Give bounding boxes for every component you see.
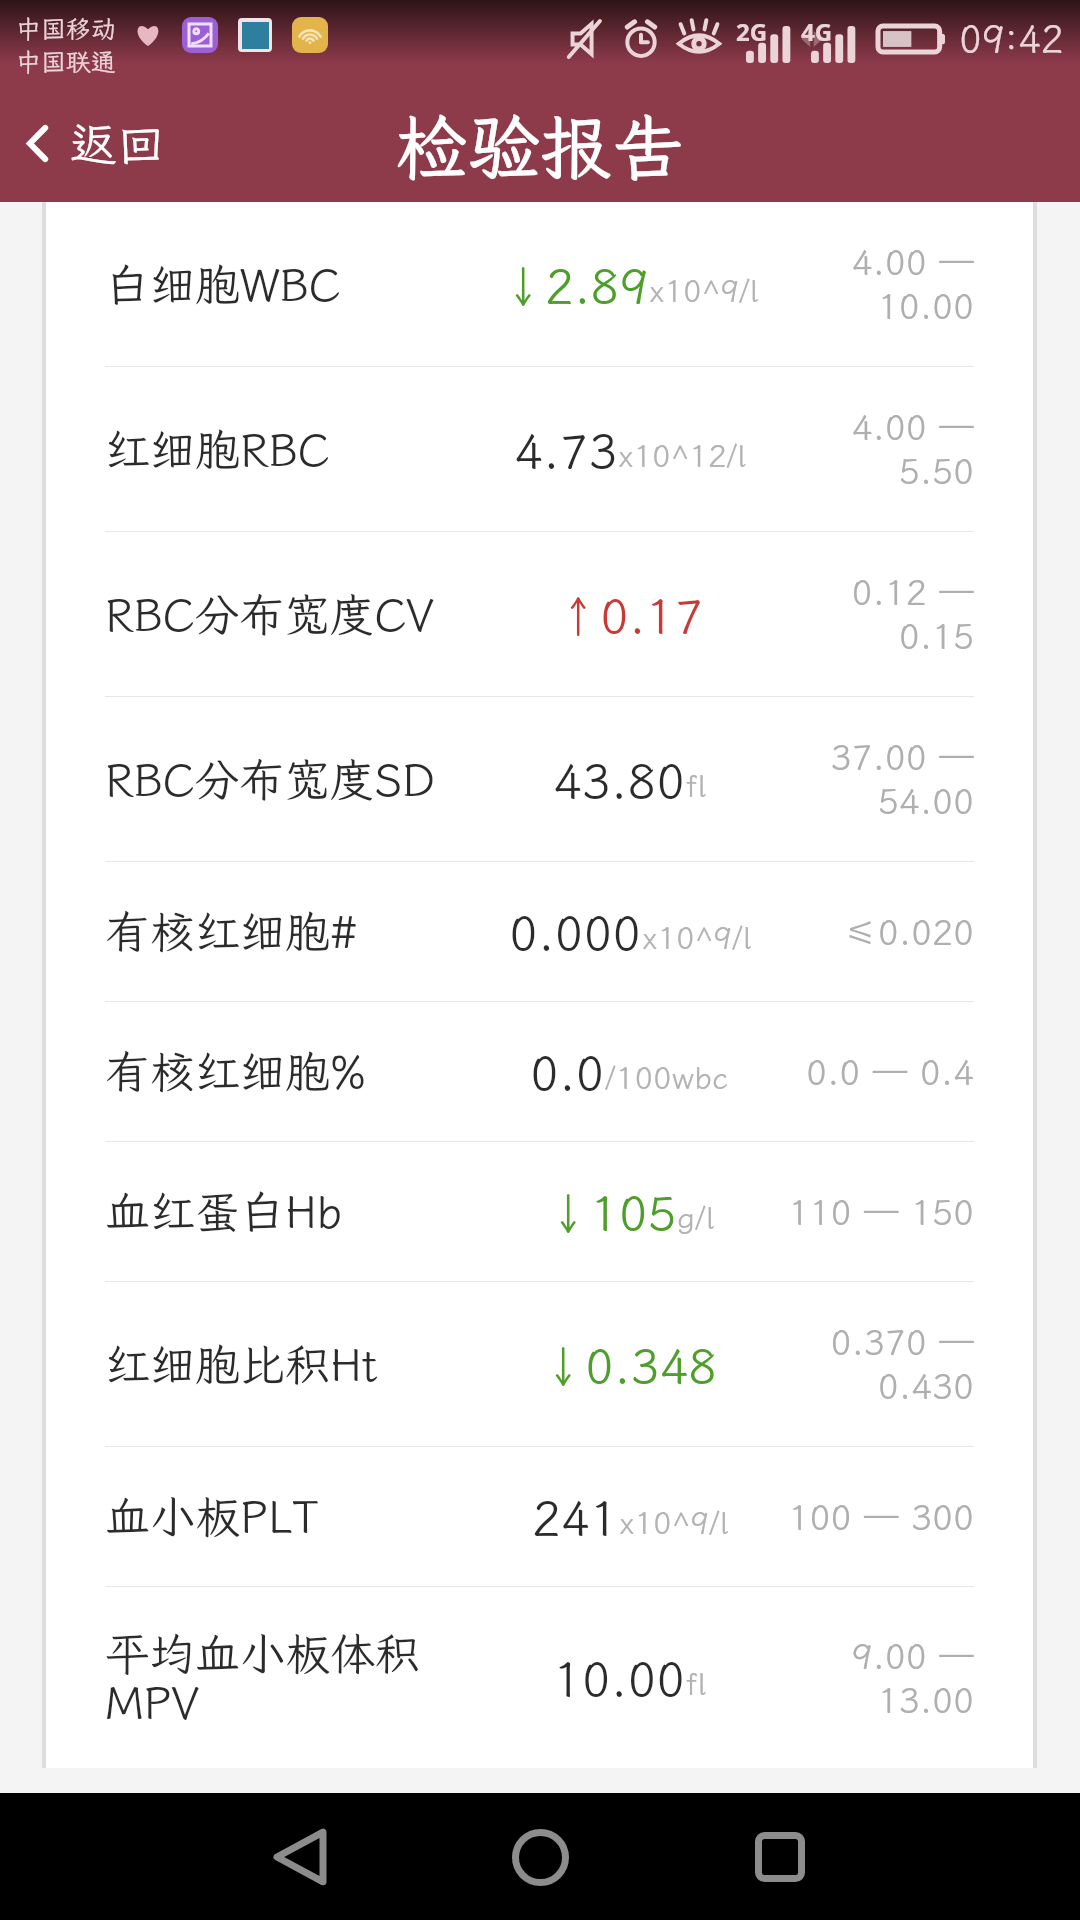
staticText: 100 — 300 <box>774 1494 974 1540</box>
button[interactable]: Home <box>480 1797 600 1917</box>
staticText: ↑ <box>556 588 600 646</box>
staticText: RBC分布宽度SD <box>105 750 435 809</box>
staticText: 有核红细胞% <box>105 1042 367 1101</box>
button[interactable]: 有核红细胞# <box>46 862 1033 1001</box>
staticText: 0.17 <box>600 583 704 646</box>
staticText: 红细胞RBC <box>105 420 330 479</box>
staticText: 白细胞WBC <box>105 255 341 314</box>
staticText: 105 <box>590 1180 677 1243</box>
button[interactable]: RBC分布宽度SD <box>46 697 1033 861</box>
staticText: 37.00 — 54.00 <box>774 734 974 824</box>
button[interactable]: RBC分布宽度CV <box>46 532 1033 696</box>
button[interactable]: Recents <box>720 1797 840 1917</box>
staticText: ↓ <box>501 258 545 316</box>
staticText: 9.00 — 13.00 <box>774 1633 974 1723</box>
staticText: fl <box>686 765 706 806</box>
staticText: 4.00 — 10.00 <box>774 239 974 329</box>
staticText: 110 — 150 <box>774 1189 974 1235</box>
staticText: ≤0.020 <box>774 909 974 955</box>
staticText: x10^9/l <box>649 270 758 311</box>
staticText: 有核红细胞# <box>105 902 358 961</box>
staticText: 0.0 — 0.4 <box>774 1049 974 1095</box>
button[interactable]: 返回 <box>0 90 190 202</box>
staticText: x10^9/l <box>642 917 751 958</box>
staticText: 血红蛋白Hb <box>105 1182 343 1241</box>
staticText: 43.80 <box>553 748 686 811</box>
staticText: 0.12 — 0.15 <box>774 569 974 659</box>
staticText: ↓ <box>541 1338 585 1396</box>
staticText: 4.73 <box>514 418 618 481</box>
staticText: 检验报告 <box>396 99 685 194</box>
button[interactable]: 血小板PLT <box>46 1447 1033 1586</box>
staticText: RBC分布宽度CV <box>105 585 434 644</box>
staticText: 红细胞比积Ht <box>105 1335 378 1394</box>
button[interactable]: 有核红细胞% <box>46 1002 1033 1141</box>
staticText: 血小板PLT <box>105 1487 319 1546</box>
button[interactable]: 红细胞RBC <box>46 367 1033 531</box>
staticText: x10^12/l <box>618 435 746 476</box>
staticText: 2G <box>736 15 768 48</box>
staticText: 中国联通 <box>16 45 117 78</box>
staticText: 中国移动 <box>16 12 117 45</box>
button[interactable]: 血红蛋白Hb <box>46 1142 1033 1281</box>
staticText: g/l <box>677 1197 714 1238</box>
staticText: 平均血小板体积MPV <box>105 1624 485 1731</box>
staticText: 4.00 — 5.50 <box>774 404 974 494</box>
staticText: 241 <box>532 1485 619 1548</box>
button[interactable]: 平均血小板体积MPV <box>46 1587 1033 1768</box>
button[interactable]: Back <box>240 1797 360 1917</box>
staticText: 09:42 <box>959 14 1064 64</box>
staticText: 0.370 — 0.430 <box>774 1319 974 1409</box>
staticText: 10.00 <box>553 1646 686 1709</box>
staticText: fl <box>686 1663 706 1704</box>
staticText: /100wbc <box>605 1057 729 1098</box>
button[interactable]: 白细胞WBC <box>46 202 1033 366</box>
staticText: x10^9/l <box>619 1502 728 1543</box>
staticText: 0.0 <box>530 1040 605 1103</box>
staticText: 返回 <box>70 112 164 174</box>
staticText: 0.348 <box>585 1333 718 1396</box>
staticText: 0.000 <box>509 900 642 963</box>
staticText: ↓ <box>546 1185 590 1243</box>
staticText: 2.89 <box>545 253 649 316</box>
staticText: 4G <box>801 15 833 48</box>
button[interactable]: 红细胞比积Ht <box>46 1282 1033 1446</box>
